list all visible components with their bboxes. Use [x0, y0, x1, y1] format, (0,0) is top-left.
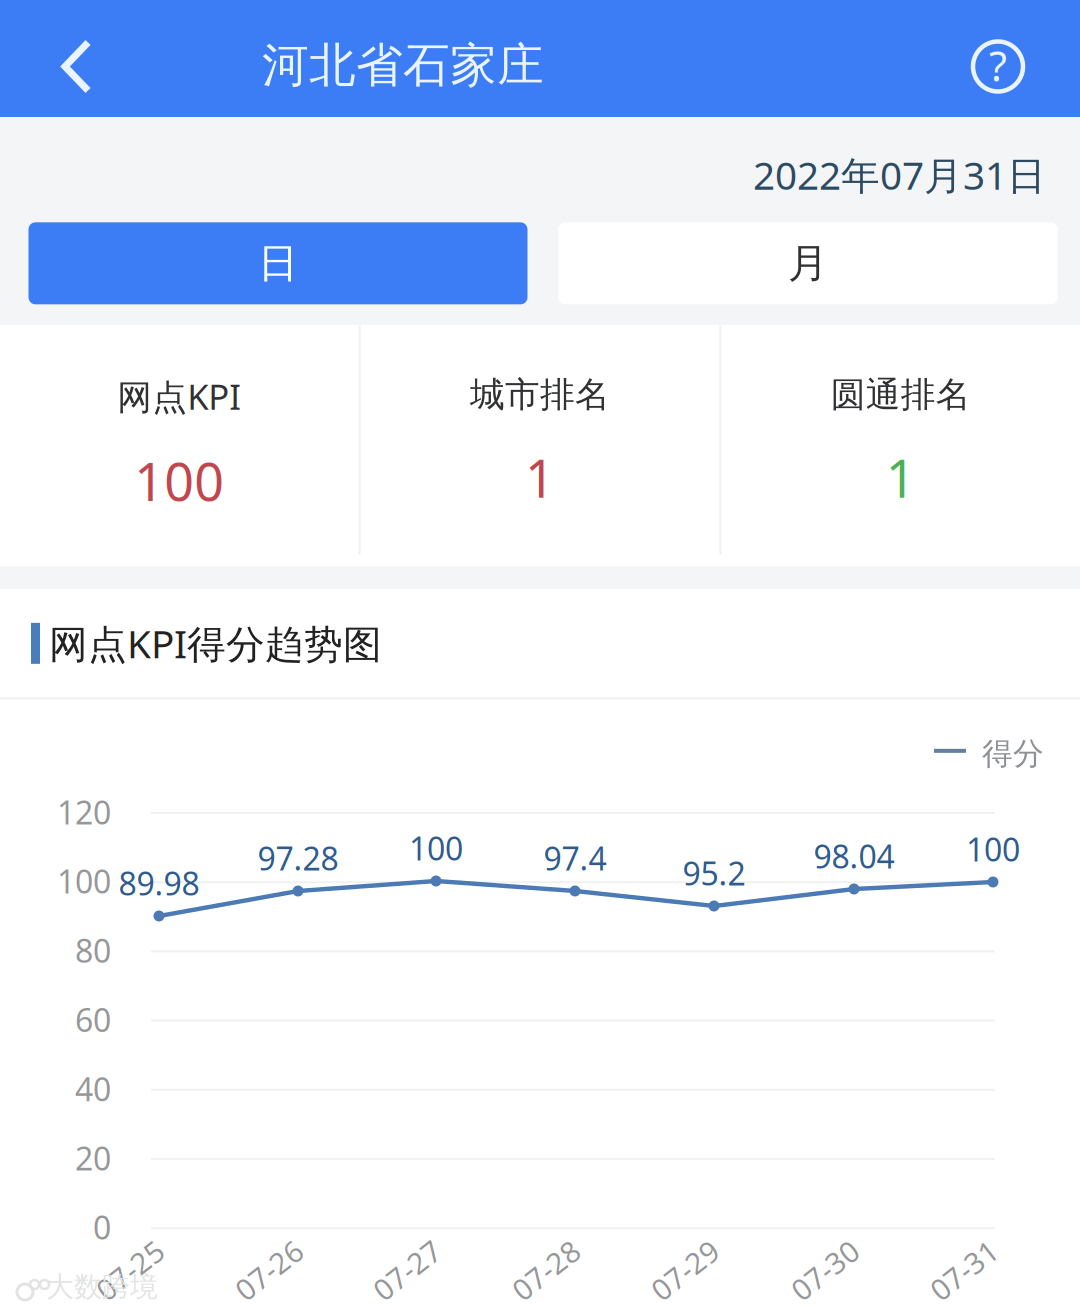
staticText: 98.04: [813, 835, 894, 877]
staticText: 网点KPI得分趋势图: [49, 618, 382, 669]
staticText: 07-27: [368, 1250, 445, 1289]
staticText: 大数跨境: [46, 1270, 158, 1304]
staticText: ?: [989, 38, 1007, 93]
staticText: 07-28: [507, 1250, 584, 1289]
staticText: 60: [75, 998, 111, 1041]
staticText: 100: [409, 827, 463, 869]
staticText: 1: [525, 443, 555, 512]
button[interactable]: Help: [944, 0, 1052, 117]
staticText: 07-29: [646, 1250, 723, 1289]
staticText: 95.2: [682, 852, 745, 894]
staticText: 城市排名: [470, 373, 610, 416]
staticText: 0: [93, 1206, 111, 1248]
button[interactable]: Back: [18, 0, 136, 117]
staticText: 07-30: [786, 1250, 863, 1289]
staticText: 得分: [982, 735, 1044, 773]
staticText: 80: [75, 929, 111, 972]
staticText: 100: [966, 828, 1020, 870]
staticText: 圆通排名: [831, 373, 971, 416]
button[interactable]: 日: [28, 222, 527, 304]
staticText: 07-26: [230, 1250, 307, 1289]
staticText: 07-25: [91, 1250, 168, 1289]
staticText: 40: [75, 1068, 111, 1110]
staticText: 日: [258, 239, 298, 288]
staticText: 07-31: [925, 1250, 1002, 1289]
staticText: 河北省石家庄: [262, 37, 544, 94]
staticText: 100: [134, 446, 224, 515]
button[interactable]: 月: [558, 222, 1057, 304]
staticText: 1: [886, 443, 916, 512]
staticText: 120: [57, 791, 111, 833]
staticText: 97.4: [543, 837, 606, 879]
staticText: 20: [75, 1137, 111, 1179]
staticText: 2022年07月31日: [753, 149, 1046, 200]
staticText: 89.98: [118, 862, 199, 904]
staticText: 网点KPI: [117, 373, 241, 419]
staticText: 97.28: [257, 837, 338, 879]
staticText: 100: [57, 860, 111, 902]
staticText: 月: [788, 239, 828, 288]
